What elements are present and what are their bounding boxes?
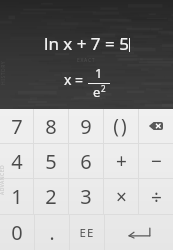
button[interactable]: 2	[34, 179, 68, 214]
staticText: 1	[11, 183, 23, 210]
button[interactable]: −	[139, 144, 173, 178]
button[interactable]: 6	[69, 144, 103, 178]
staticText: 5	[45, 148, 57, 175]
staticText: EE	[79, 225, 95, 241]
staticText: +	[116, 148, 127, 174]
staticText: x =	[64, 70, 84, 89]
button[interactable]: Delete	[139, 109, 173, 143]
staticText: 1	[95, 64, 103, 82]
staticText: ÷	[151, 184, 162, 210]
staticText: 9	[80, 113, 92, 140]
other: Delete	[149, 122, 163, 130]
staticText: .	[49, 220, 55, 246]
staticText: 6	[80, 148, 92, 175]
button[interactable]: EE	[70, 215, 104, 250]
staticText: 2	[45, 183, 57, 210]
button[interactable]: .	[35, 215, 69, 250]
button[interactable]: 1	[0, 179, 33, 214]
button[interactable]: ()	[104, 109, 138, 143]
staticText: ×	[116, 184, 127, 210]
button[interactable]: ÷	[139, 179, 173, 214]
staticText: 3	[80, 183, 92, 210]
button[interactable]: 0	[0, 215, 34, 250]
staticText: ()	[113, 113, 129, 139]
staticText: 4	[11, 148, 23, 175]
staticText: ADVANCED	[0, 164, 6, 195]
staticText: 0	[11, 219, 23, 246]
button[interactable]: 5	[34, 144, 68, 178]
other: Enter	[128, 227, 151, 238]
staticText: 7	[11, 113, 23, 140]
button[interactable]: 4	[0, 144, 33, 178]
staticText: 8	[45, 113, 57, 140]
button[interactable]: 7	[0, 109, 33, 143]
button[interactable]: 8	[34, 109, 68, 143]
button[interactable]: ADVANCED	[0, 176, 18, 183]
staticText: −	[151, 148, 162, 174]
staticText: HISTORY	[0, 60, 7, 85]
staticText: e	[93, 83, 101, 101]
button[interactable]: ×	[104, 179, 138, 214]
staticText: ln x + 7 = 5	[44, 32, 129, 55]
staticText: EXACT	[77, 57, 96, 64]
button[interactable]: Enter	[105, 215, 173, 250]
button[interactable]: 9	[69, 109, 103, 143]
button[interactable]: +	[104, 144, 138, 178]
staticText: 2	[101, 83, 106, 94]
button[interactable]: 3	[69, 179, 103, 214]
